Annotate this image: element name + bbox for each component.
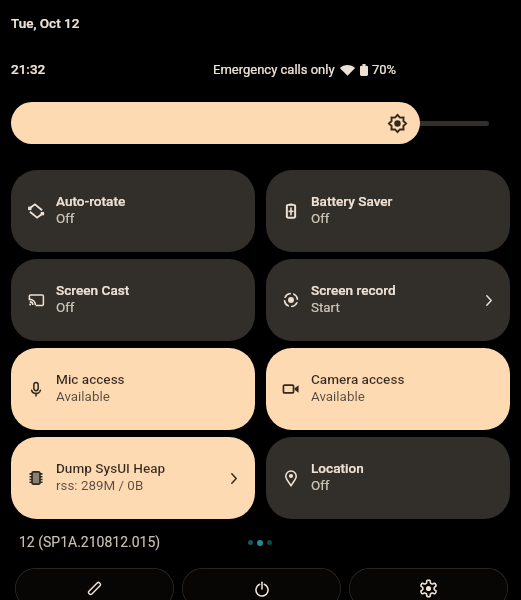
button[interactable]: Power [182, 568, 341, 600]
staticText: Tue, Oct 12 [11, 15, 80, 31]
staticText: Camera access [311, 371, 405, 387]
staticText: Available [56, 389, 110, 405]
staticText: Battery Saver [311, 193, 393, 209]
staticText: Dump SysUI Heap [56, 460, 166, 476]
button[interactable]: Screen Cast [11, 259, 255, 341]
button[interactable]: Screen record [266, 259, 510, 341]
staticText: rss: 289M / 0B [56, 478, 144, 494]
button[interactable]: Auto-rotate [11, 170, 255, 252]
staticText: Emergency calls only [213, 62, 335, 77]
staticText: Off [56, 211, 75, 227]
button[interactable]: Location [266, 437, 510, 519]
button[interactable]: Settings [349, 568, 508, 600]
staticText: Start [311, 300, 340, 316]
staticText: Off [56, 300, 75, 316]
staticText: Auto-rotate [56, 193, 126, 209]
staticText: 21:32 [11, 61, 46, 77]
button[interactable]: Dump SysUI Heap [11, 437, 255, 519]
button[interactable]: Brightness [11, 102, 420, 144]
staticText: 12 (SP1A.210812.015) [19, 534, 161, 550]
staticText: Available [311, 389, 365, 405]
staticText: 70% [372, 62, 397, 77]
staticText: Off [311, 478, 330, 494]
staticText: Mic access [56, 371, 125, 387]
staticText: Location [311, 460, 364, 476]
button[interactable]: Camera access [266, 348, 510, 430]
staticText: Off [311, 211, 330, 227]
button[interactable]: Edit [15, 568, 174, 600]
button[interactable]: Mic access [11, 348, 255, 430]
staticText: Screen record [311, 282, 396, 298]
button[interactable]: Battery Saver [266, 170, 510, 252]
staticText: Screen Cast [56, 282, 130, 298]
